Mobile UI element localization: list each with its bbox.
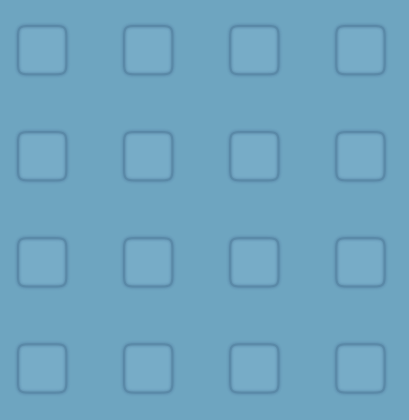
button[interactable]: Item 11	[230, 238, 278, 286]
button[interactable]: Item 7	[230, 132, 278, 180]
button[interactable]: Item 13	[18, 344, 66, 393]
button[interactable]: Item 15	[230, 344, 278, 393]
button[interactable]: Item 4	[336, 26, 385, 74]
button[interactable]: Item 8	[336, 132, 385, 180]
button[interactable]: Item 10	[124, 238, 172, 286]
button[interactable]: Item 12	[336, 238, 385, 286]
button[interactable]: Item 9	[18, 238, 66, 286]
button[interactable]: Item 3	[230, 26, 278, 74]
button[interactable]: Item 16	[336, 344, 385, 393]
button[interactable]: Item 6	[124, 132, 172, 180]
button[interactable]: Item 2	[124, 26, 172, 74]
button[interactable]: Item 5	[18, 132, 66, 180]
button[interactable]: Item 1	[18, 26, 66, 74]
button[interactable]: Item 14	[124, 344, 172, 393]
